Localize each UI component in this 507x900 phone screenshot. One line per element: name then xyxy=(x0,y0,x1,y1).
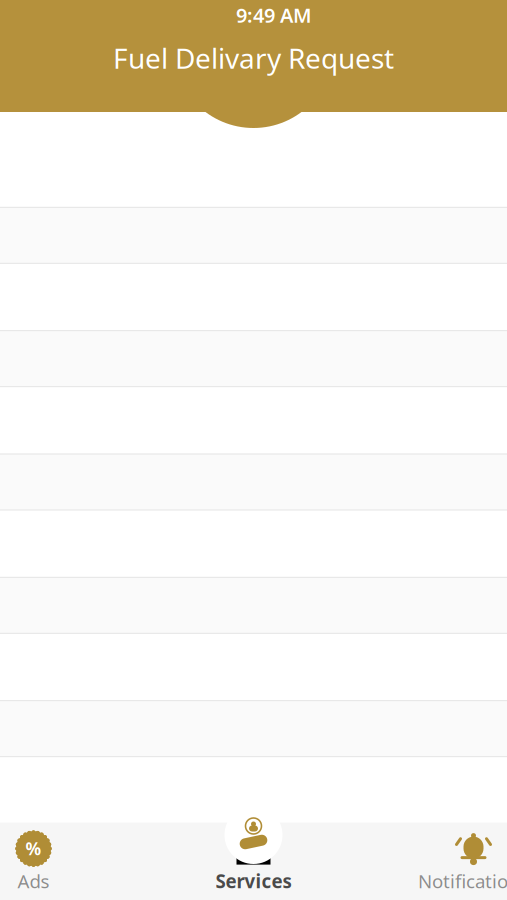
staticText: Fuel Delivary Request xyxy=(113,39,394,77)
staticText: % xyxy=(25,837,41,860)
button[interactable]: % xyxy=(0,823,143,900)
staticText: Ads xyxy=(17,869,49,893)
button[interactable]: Services xyxy=(143,823,363,900)
button[interactable]: Notifications xyxy=(363,823,507,900)
button[interactable]: Address Description xyxy=(0,824,507,880)
staticText: 9:49 AM xyxy=(236,2,312,28)
staticText: Services xyxy=(215,869,291,893)
staticText: Notifications xyxy=(418,869,507,893)
button[interactable]: Services xyxy=(224,806,282,864)
